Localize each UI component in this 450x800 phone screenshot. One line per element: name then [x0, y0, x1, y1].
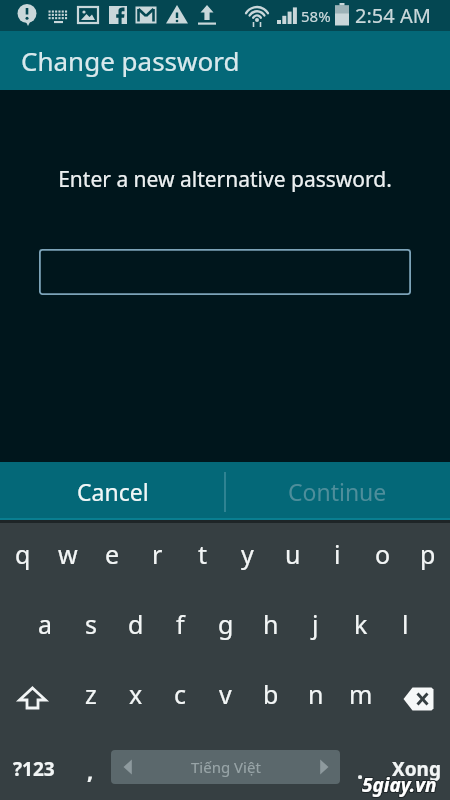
staticText: v	[219, 677, 232, 711]
staticText: ?123	[13, 756, 55, 782]
staticText: Cancel	[77, 476, 149, 507]
button[interactable]: l	[383, 601, 428, 647]
button[interactable]: n	[293, 671, 338, 717]
staticText: w	[58, 537, 78, 571]
staticText: 2:54 AM	[355, 2, 431, 29]
button[interactable]: d	[113, 601, 158, 647]
button[interactable]: s	[68, 601, 113, 647]
staticText: Change password	[21, 43, 240, 78]
button[interactable]: o	[360, 531, 405, 577]
staticText: j	[312, 607, 319, 641]
button[interactable]: e	[90, 531, 135, 577]
staticText: y	[241, 537, 254, 571]
button[interactable]: c	[158, 671, 203, 717]
button[interactable]: f	[158, 601, 203, 647]
staticText: Continue	[288, 476, 387, 507]
button[interactable]: r	[135, 531, 180, 577]
staticText: 5giay.vn	[361, 773, 436, 799]
staticText: p	[420, 537, 436, 571]
staticText: ,	[87, 755, 94, 785]
staticText: u	[285, 537, 301, 571]
staticText: 5giay.vn	[362, 771, 437, 797]
button[interactable]: a	[23, 601, 68, 647]
staticText: l	[402, 607, 409, 641]
staticText: 5giay.vn	[363, 771, 438, 797]
staticText: q	[15, 537, 31, 571]
button[interactable]: u	[270, 531, 315, 577]
staticText: Enter a new alternative password.	[0, 165, 450, 194]
button[interactable]: p	[405, 531, 450, 577]
staticText: f	[176, 607, 185, 641]
staticText: 5giay.vn	[363, 772, 438, 798]
button[interactable]: v	[203, 671, 248, 717]
staticText: d	[128, 607, 144, 641]
button[interactable]: t	[180, 531, 225, 577]
staticText: k	[354, 607, 368, 641]
button[interactable]: h	[248, 601, 293, 647]
staticText: e	[105, 537, 120, 571]
button[interactable]: q	[0, 531, 45, 577]
button[interactable]: x	[113, 671, 158, 717]
button[interactable]: Xong	[382, 746, 450, 792]
staticText: i	[334, 537, 341, 571]
button[interactable]: y	[225, 531, 270, 577]
staticText: n	[308, 677, 324, 711]
staticText: g	[218, 607, 234, 641]
button[interactable]: Backspace	[396, 683, 441, 715]
button[interactable]: Cancel	[0, 462, 225, 520]
button[interactable]: j	[293, 601, 338, 647]
staticText: b	[263, 677, 279, 711]
button[interactable]: Tiếng Việt	[111, 750, 340, 784]
staticText: Tiếng Việt	[191, 757, 261, 777]
button[interactable]: .	[338, 747, 383, 793]
button[interactable]: w	[45, 531, 90, 577]
staticText: 5giay.vn	[361, 772, 436, 798]
staticText: h	[263, 607, 279, 641]
button[interactable]: ,	[68, 747, 113, 793]
staticText: 5giay.vn	[362, 772, 437, 798]
staticText: 5giay.vn	[361, 771, 436, 797]
staticText: 5giay.vn	[362, 773, 437, 799]
staticText: z	[85, 677, 97, 711]
button[interactable]: ?123	[0, 746, 68, 792]
staticText: c	[174, 677, 187, 711]
staticText: t	[198, 537, 208, 571]
button[interactable]: z	[68, 671, 113, 717]
button[interactable]: m	[338, 671, 383, 717]
staticText: 58%	[301, 6, 331, 26]
staticText: r	[152, 537, 163, 571]
button[interactable]: b	[248, 671, 293, 717]
staticText: o	[375, 537, 391, 571]
staticText: Xong	[392, 756, 441, 782]
button[interactable]: i	[315, 531, 360, 577]
staticText: .	[357, 755, 364, 785]
button[interactable]: Continue	[225, 462, 450, 520]
staticText: x	[129, 677, 143, 711]
button[interactable]: Shift	[10, 683, 55, 715]
staticText: s	[85, 607, 97, 641]
staticText: a	[38, 607, 53, 641]
staticText: m	[349, 677, 373, 711]
button[interactable]: g	[203, 601, 248, 647]
button[interactable]: Password input field	[39, 249, 411, 295]
button[interactable]: k	[338, 601, 383, 647]
staticText: 5giay.vn	[363, 773, 438, 799]
